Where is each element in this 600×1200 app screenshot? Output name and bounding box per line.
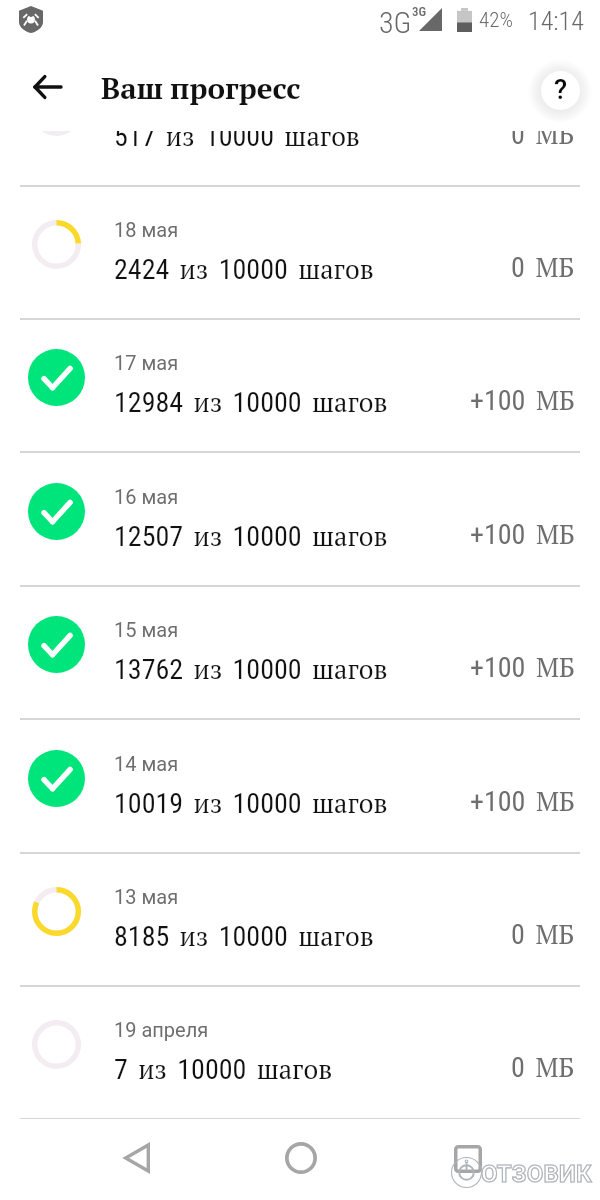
- staticText: 16 мая: [114, 485, 179, 508]
- staticText: ?: [554, 74, 568, 106]
- button[interactable]: Help: [528, 58, 592, 122]
- staticText: 2424 из 10000 шагов: [114, 251, 374, 286]
- button[interactable]: 15 мая: [0, 587, 600, 720]
- staticText: 0 МБ: [511, 116, 575, 151]
- staticText: +100 МБ: [470, 649, 575, 684]
- staticText: +100 МБ: [470, 783, 575, 818]
- staticText: 0 МБ: [511, 916, 575, 951]
- staticText: +100 МБ: [470, 382, 575, 417]
- staticText: 12984 из 10000 шагов: [114, 384, 388, 419]
- staticText: 517 из 10000 шагов: [114, 118, 360, 153]
- staticText: 14 мая: [114, 752, 179, 775]
- staticText: 14:14: [528, 6, 584, 36]
- staticText: 3G: [379, 5, 412, 40]
- button[interactable]: Back: [18, 58, 76, 116]
- staticText: Ваш прогресс: [101, 68, 301, 107]
- button[interactable]: 19 мая: [0, 54, 600, 187]
- staticText: 19 апреля: [114, 1018, 209, 1041]
- staticText: 7 из 10000 шагов: [114, 1051, 333, 1086]
- button[interactable]: Back: [100, 1121, 173, 1194]
- button[interactable]: 17 мая: [0, 320, 600, 453]
- staticText: 13 мая: [114, 885, 179, 908]
- button[interactable]: 19 апреля: [0, 987, 600, 1119]
- button[interactable]: Home: [264, 1121, 337, 1194]
- staticText: 13762 из 10000 шагов: [114, 651, 388, 686]
- staticText: 19 мая: [114, 85, 179, 108]
- staticText: 0 МБ: [511, 249, 575, 284]
- staticText: +100 МБ: [470, 516, 575, 551]
- staticText: ОТЗОВИК: [481, 1160, 592, 1188]
- staticText: 10019 из 10000 шагов: [114, 785, 388, 820]
- staticText: 17 мая: [114, 351, 179, 374]
- button[interactable]: 14 мая: [0, 721, 600, 854]
- staticText: 8185 из 10000 шагов: [114, 918, 374, 953]
- button[interactable]: 16 мая: [0, 454, 600, 587]
- button[interactable]: 18 мая: [0, 187, 600, 320]
- staticText: 0 МБ: [511, 1049, 575, 1084]
- button[interactable]: 13 мая: [0, 854, 600, 987]
- staticText: 42%: [479, 8, 513, 33]
- staticText: 12507 из 10000 шагов: [114, 518, 388, 553]
- staticText: 18 мая: [114, 218, 179, 241]
- button[interactable]: Recent apps: [431, 1122, 504, 1195]
- staticText: 15 мая: [114, 618, 179, 641]
- staticText: 3G: [412, 4, 427, 19]
